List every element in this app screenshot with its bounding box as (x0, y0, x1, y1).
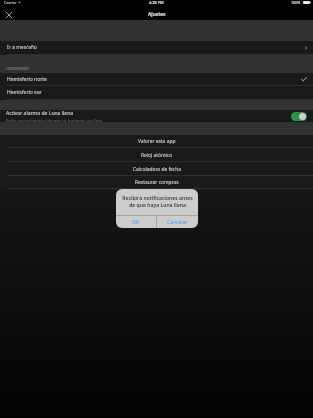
staticText: Recibe una notificación el día antes de … (6, 118, 102, 122)
button[interactable]: Hemisferio sur (0, 86, 313, 100)
staticText: Recibirá notificaciones antes de que hay… (122, 195, 193, 209)
staticText: 100% (291, 0, 301, 5)
button[interactable]: Ir a mes/año (0, 41, 313, 55)
button[interactable]: Valorar esta app (0, 135, 313, 148)
button[interactable]: Hemisferio norte (0, 73, 313, 86)
staticText: Cancelar (167, 219, 188, 226)
staticText: Activar alarma de Luna llena (6, 110, 74, 117)
staticText: Carrier (4, 0, 17, 5)
staticText: Ir a mes/año (7, 44, 37, 51)
staticText: HEMISFERIO (6, 66, 29, 71)
button[interactable]: Activar alarma de Luna llena (0, 110, 313, 123)
staticText: Valorar esta app (138, 138, 176, 145)
button[interactable]: OK (116, 216, 156, 228)
staticText: Hemisferio norte (7, 76, 47, 83)
staticText: Calculadora de fecha (133, 166, 181, 173)
staticText: OK (132, 219, 140, 226)
button[interactable]: Reloj atómico (0, 148, 313, 162)
button[interactable]: Restaurar compras (0, 176, 313, 189)
button[interactable]: Cancelar (157, 216, 198, 228)
staticText: Ajustes (148, 11, 166, 18)
staticText: Hemisferio sur (7, 89, 42, 96)
staticText: Restaurar compras (135, 179, 179, 186)
staticText: 4:28 PM (149, 0, 164, 5)
staticText: Reloj atómico (141, 152, 173, 159)
button[interactable]: Calculadora de fecha (0, 162, 313, 176)
button[interactable]: Close (3, 9, 15, 21)
